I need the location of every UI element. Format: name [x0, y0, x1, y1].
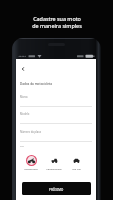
button[interactable]: Tuk Tuk	[71, 155, 82, 170]
staticText: Dados da motocicleta	[20, 82, 52, 86]
staticText: Tuk Tuk	[72, 167, 81, 170]
button[interactable]: Caminhonete	[46, 155, 62, 170]
staticText: Marca	[20, 95, 28, 99]
staticText: Caminhonete	[46, 167, 62, 170]
button[interactable]: Motocicleta	[24, 155, 38, 170]
staticText: Motocicleta	[24, 167, 38, 170]
staticText: Cor	[20, 144, 24, 147]
staticText: de maneira simples	[32, 22, 82, 29]
button[interactable]: Back	[18, 64, 28, 74]
staticText: Modelo	[20, 112, 30, 116]
staticText: Número da placa	[20, 130, 41, 134]
staticText: Cadastre sua moto	[33, 15, 81, 22]
button[interactable]: PRÓXIMO	[22, 182, 91, 195]
staticText: PRÓXIMO	[49, 188, 64, 192]
